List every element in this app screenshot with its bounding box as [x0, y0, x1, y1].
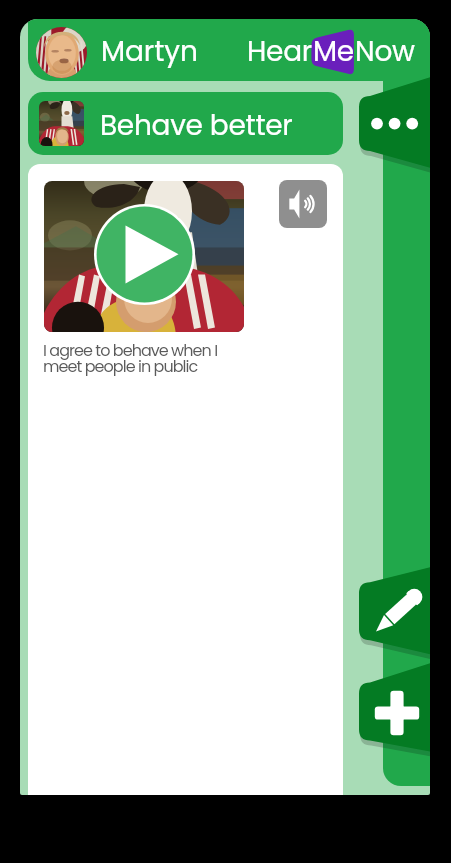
staticText: Behave better: [100, 106, 293, 145]
button[interactable]: Add: [359, 663, 430, 752]
staticText: Hear: [247, 32, 312, 71]
button[interactable]: Martyn: [28, 19, 430, 81]
staticText: Martyn: [101, 32, 198, 71]
button[interactable]: More options: [359, 77, 430, 168]
button[interactable]: [44, 181, 244, 332]
staticText: Now: [355, 32, 415, 71]
staticText: I agree to behave when I meet people in …: [43, 339, 218, 377]
button[interactable]: Behave better: [28, 92, 343, 155]
button[interactable]: Play audio: [279, 180, 327, 228]
staticText: Me: [313, 32, 354, 71]
button[interactable]: Edit: [359, 567, 430, 654]
